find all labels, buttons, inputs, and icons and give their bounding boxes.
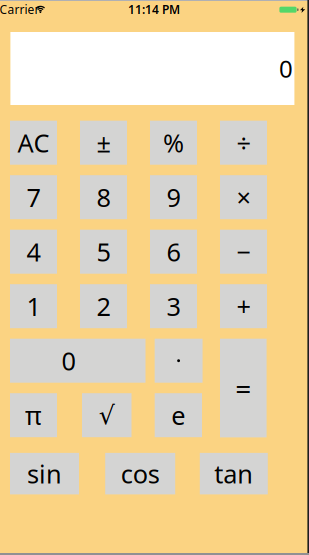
staticText: tan <box>214 457 253 490</box>
staticText: 9 <box>166 180 180 214</box>
staticText: ± <box>96 126 110 159</box>
button[interactable]: 0 <box>10 339 145 383</box>
staticText: AC <box>17 126 49 159</box>
button[interactable]: tan <box>200 453 268 494</box>
staticText: 4 <box>26 235 40 268</box>
button[interactable]: = <box>220 339 267 437</box>
button[interactable]: AC <box>10 121 57 165</box>
button[interactable]: 1 <box>10 284 57 328</box>
button[interactable]: 8 <box>80 175 127 219</box>
button[interactable]: ± <box>80 121 127 165</box>
staticText: Carrier <box>0 1 40 17</box>
button[interactable]: 4 <box>10 230 57 274</box>
button[interactable]: 2 <box>80 284 127 328</box>
button[interactable]: √ <box>82 393 131 437</box>
staticText: e <box>171 398 185 432</box>
staticText: 0 <box>61 344 75 377</box>
staticText: cos <box>121 457 160 490</box>
button[interactable] <box>155 339 203 383</box>
staticText: √ <box>99 401 115 430</box>
staticText: % <box>163 126 184 159</box>
button[interactable]: − <box>220 230 267 274</box>
button[interactable]: 9 <box>150 175 197 219</box>
staticText: = <box>235 369 251 407</box>
button[interactable]: sin <box>10 453 79 494</box>
staticText: π <box>25 398 42 432</box>
staticText: ÷ <box>236 126 250 159</box>
button[interactable]: % <box>150 121 197 165</box>
button[interactable]: 5 <box>80 230 127 274</box>
button[interactable]: 3 <box>150 284 197 328</box>
button[interactable]: + <box>220 284 267 328</box>
staticText: + <box>236 289 250 323</box>
staticText: × <box>236 180 250 214</box>
button[interactable]: e <box>155 393 202 437</box>
staticText: 6 <box>166 235 180 268</box>
staticText: 1 <box>26 289 40 323</box>
staticText: 0 <box>279 53 293 84</box>
staticText: sin <box>27 457 62 490</box>
staticText: 7 <box>26 180 40 214</box>
staticText: 8 <box>96 180 110 214</box>
staticText: − <box>236 235 250 268</box>
staticText: 5 <box>96 235 110 268</box>
button[interactable]: 6 <box>150 230 197 274</box>
staticText: 11:14 PM <box>128 1 180 17</box>
button[interactable]: ÷ <box>220 121 267 165</box>
button[interactable]: cos <box>105 453 175 494</box>
button[interactable]: π <box>10 393 57 437</box>
button[interactable]: 7 <box>10 175 57 219</box>
staticText: 2 <box>96 289 110 323</box>
button[interactable]: × <box>220 175 267 219</box>
staticText: 3 <box>166 289 180 323</box>
